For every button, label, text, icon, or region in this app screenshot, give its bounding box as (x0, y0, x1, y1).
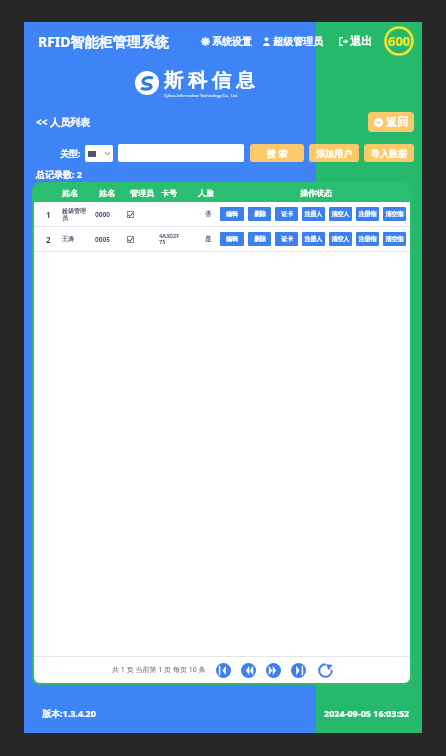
staticText: 系统设置 (212, 35, 252, 48)
staticText: 2 (46, 234, 51, 245)
button[interactable] (118, 144, 244, 162)
staticText: 清空指纹 (383, 235, 406, 243)
button[interactable]: 清空人脸 (329, 232, 352, 246)
staticText: 超级管理 员 (62, 207, 86, 222)
staticText: 删除 (254, 235, 266, 243)
button[interactable]: Previous page (241, 663, 256, 678)
button[interactable]: Refresh (318, 663, 333, 678)
button[interactable]: Admin checkbox (127, 236, 134, 243)
staticText: 关型: (60, 147, 81, 159)
button[interactable]: 导入数据 (364, 144, 414, 162)
staticText: 注册指纹 (356, 235, 379, 243)
staticText: 卡号 (161, 188, 177, 198)
staticText: 注册人脸 (302, 210, 325, 218)
staticText: 2024-09-05 16:03:52 (324, 707, 410, 719)
button[interactable]: First page (216, 663, 231, 678)
button[interactable]: 证卡 (275, 207, 298, 221)
button[interactable]: 添加用户 (309, 144, 359, 162)
button[interactable]: 退出 (337, 30, 374, 52)
staticText: 共 1 页 当前第 1 页 每页 10 条 (112, 665, 206, 675)
button[interactable]: 返回 (368, 112, 414, 132)
staticText: 清空指纹 (383, 210, 406, 218)
staticText: 编辑 (226, 210, 238, 218)
button[interactable]: 注册人脸 (302, 232, 325, 246)
staticText: Cybos Information Technology Co., Ltd. (164, 93, 238, 98)
staticText: 人脸 (198, 188, 214, 198)
button[interactable]: 删除 (248, 232, 271, 246)
staticText: 注册指纹 (356, 210, 379, 218)
button[interactable]: 清空指纹 (383, 232, 406, 246)
staticText: 证卡 (281, 210, 293, 218)
staticText: 注册人脸 (302, 235, 325, 243)
staticText: 搜 索 (267, 147, 288, 159)
button[interactable]: 注册指纹 (356, 232, 379, 246)
staticText: 是 (205, 235, 212, 243)
staticText: 1 (46, 209, 51, 220)
staticText: 王涛 (62, 235, 74, 243)
button[interactable]: Next page (266, 663, 281, 678)
staticText: 清空人脸 (329, 235, 352, 243)
staticText: 退出 (350, 34, 372, 48)
staticText: 版本:1.3.4.20 (42, 707, 96, 719)
button[interactable]: 系统设置 (199, 31, 254, 52)
staticText: 4A3D2F 75 (159, 232, 180, 246)
button[interactable]: 清空人脸 (329, 207, 352, 221)
staticText: 600 (388, 32, 411, 50)
staticText: 管理员 (130, 188, 154, 198)
staticText: 0005 (95, 235, 110, 244)
button[interactable]: 注册指纹 (356, 207, 379, 221)
staticText: 否 (205, 210, 212, 218)
staticText: 返回 (386, 115, 408, 129)
button[interactable]: Last page (291, 663, 306, 678)
button[interactable]: 删除 (248, 207, 271, 221)
button[interactable]: 证卡 (275, 232, 298, 246)
staticText: 删除 (254, 210, 266, 218)
staticText: 姓名 (99, 188, 115, 198)
button[interactable]: << 人员列表 (36, 115, 91, 129)
staticText: 0000 (95, 210, 110, 219)
button[interactable]: Admin checkbox (127, 211, 134, 218)
button[interactable]: 超级管理员 (260, 31, 325, 52)
staticText: 总记录数: 2 (36, 168, 83, 180)
staticText: 超级管理员 (273, 35, 323, 48)
staticText: 操作状态 (300, 188, 332, 198)
staticText: 证卡 (281, 235, 293, 243)
staticText: 导入数据 (371, 148, 407, 159)
button[interactable]: 搜 索 (250, 144, 304, 162)
button[interactable]: 注册人脸 (302, 207, 325, 221)
staticText: RFID智能柜管理系统 (38, 32, 169, 51)
button[interactable]: 清空指纹 (383, 207, 406, 221)
staticText: 斯 科 信 息 (164, 67, 255, 93)
button[interactable]: 编辑 (220, 232, 244, 246)
staticText: 姓名 (62, 188, 78, 198)
button[interactable]: 编辑 (220, 207, 244, 221)
button[interactable] (85, 145, 113, 162)
staticText: 编辑 (226, 235, 238, 243)
staticText: 清空人脸 (329, 210, 352, 218)
staticText: 添加用户 (316, 148, 352, 159)
button[interactable]: 600 indicator (384, 26, 414, 56)
